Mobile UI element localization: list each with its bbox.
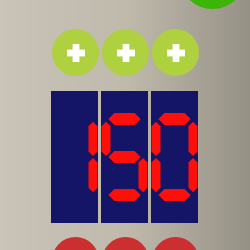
button[interactable]: Decrement (102, 237, 149, 250)
button[interactable]: Increment (152, 29, 199, 76)
button[interactable]: Increment (52, 29, 99, 76)
button[interactable]: Decrement (52, 237, 99, 250)
button[interactable]: Increment (102, 29, 149, 76)
button[interactable]: Decrement (152, 237, 199, 250)
button[interactable]: Settings (179, 0, 246, 9)
